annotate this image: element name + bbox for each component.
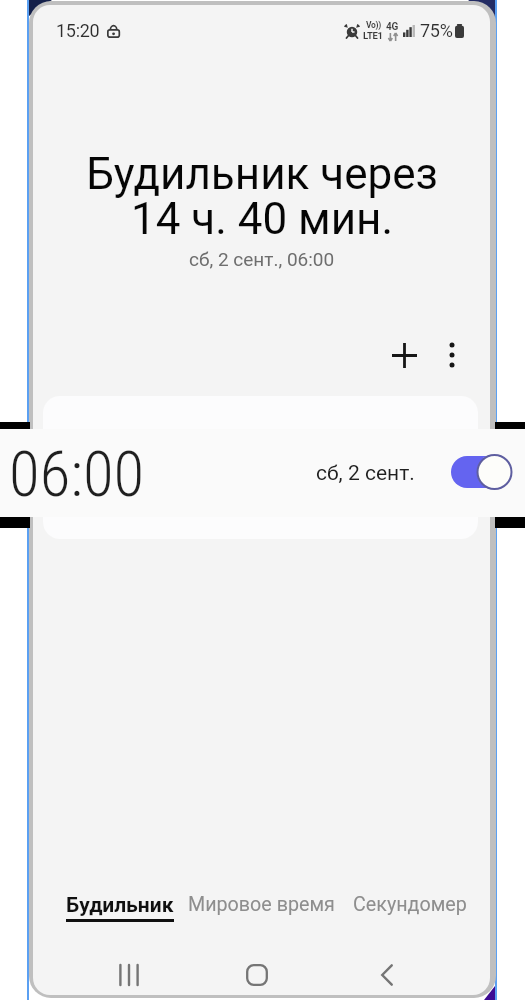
staticText: Будильник: [66, 893, 174, 918]
button[interactable]: Recents: [105, 955, 153, 995]
staticText: 75%: [420, 20, 453, 41]
button[interactable]: Будильник: [66, 893, 174, 922]
staticText: 4G: [386, 21, 399, 33]
button[interactable]: Мировое время: [188, 893, 335, 916]
staticText: Vo)): [366, 20, 381, 30]
button[interactable]: Секундомер: [353, 893, 467, 916]
staticText: 15:20: [56, 20, 100, 41]
button[interactable]: [43, 396, 478, 539]
button[interactable]: Add alarm: [380, 331, 428, 379]
button[interactable]: Back: [363, 955, 411, 995]
staticText: LTE1: [363, 30, 383, 41]
staticText: сб, 2 сент.: [316, 461, 415, 486]
button[interactable]: More options: [428, 331, 476, 379]
staticText: Мировое время: [188, 893, 335, 916]
staticText: Секундомер: [353, 893, 467, 916]
staticText: 06:00: [9, 438, 145, 512]
staticText: сб, 2 сент., 06:00: [189, 248, 335, 270]
button[interactable]: Home: [233, 955, 281, 995]
staticText: Будильник через 14 ч. 40 мин.: [86, 148, 438, 244]
